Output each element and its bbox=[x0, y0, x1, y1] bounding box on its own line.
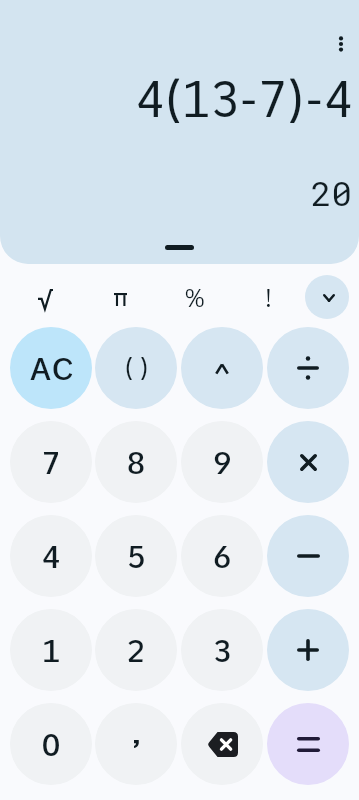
button[interactable]: % bbox=[157, 274, 231, 320]
button[interactable]: 8 bbox=[95, 421, 177, 503]
button[interactable]: 0 bbox=[10, 703, 92, 785]
button[interactable]: ^ bbox=[181, 327, 263, 409]
staticText: 3 bbox=[213, 632, 232, 669]
staticText: % bbox=[185, 282, 206, 313]
staticText: AC bbox=[29, 350, 74, 387]
button[interactable]: 5 bbox=[95, 515, 177, 597]
staticText: 5 bbox=[126, 538, 146, 575]
button[interactable]: 9 bbox=[181, 421, 263, 503]
button[interactable]: 4 bbox=[10, 515, 92, 597]
button[interactable]: − bbox=[267, 515, 349, 597]
staticText: 7 bbox=[41, 444, 61, 481]
button[interactable]: Square root bbox=[8, 274, 83, 320]
button[interactable]: AC bbox=[10, 327, 92, 409]
button[interactable]: Pi bbox=[83, 274, 157, 320]
button[interactable]: delete bbox=[181, 703, 263, 785]
staticText: 2 bbox=[126, 632, 146, 669]
button[interactable]: More options bbox=[322, 25, 359, 63]
button[interactable]: , bbox=[95, 703, 177, 785]
button[interactable]: × bbox=[267, 421, 349, 503]
button[interactable]: 6 bbox=[181, 515, 263, 597]
staticText: 4(13-7)-4 bbox=[135, 70, 353, 129]
staticText: 1 bbox=[41, 632, 61, 669]
button[interactable]: 2 bbox=[95, 609, 177, 691]
button[interactable]: ÷ bbox=[267, 327, 349, 409]
staticText: ! bbox=[264, 282, 274, 313]
button[interactable]: 7 bbox=[10, 421, 92, 503]
staticText: 9 bbox=[212, 444, 232, 481]
button[interactable]: () bbox=[95, 327, 177, 409]
staticText: 20 bbox=[311, 170, 352, 215]
button[interactable]: ! bbox=[231, 274, 305, 320]
button[interactable]: = bbox=[267, 703, 349, 785]
button[interactable]: Collapse keypad bbox=[305, 275, 349, 319]
staticText: 8 bbox=[126, 444, 146, 481]
button[interactable]: 3 bbox=[181, 609, 263, 691]
staticText: 6 bbox=[212, 538, 232, 575]
staticText: 0 bbox=[41, 726, 61, 763]
staticText: () bbox=[124, 353, 155, 383]
button[interactable]: 1 bbox=[10, 609, 92, 691]
staticText: 4 bbox=[41, 538, 61, 575]
button[interactable]: + bbox=[267, 609, 349, 691]
